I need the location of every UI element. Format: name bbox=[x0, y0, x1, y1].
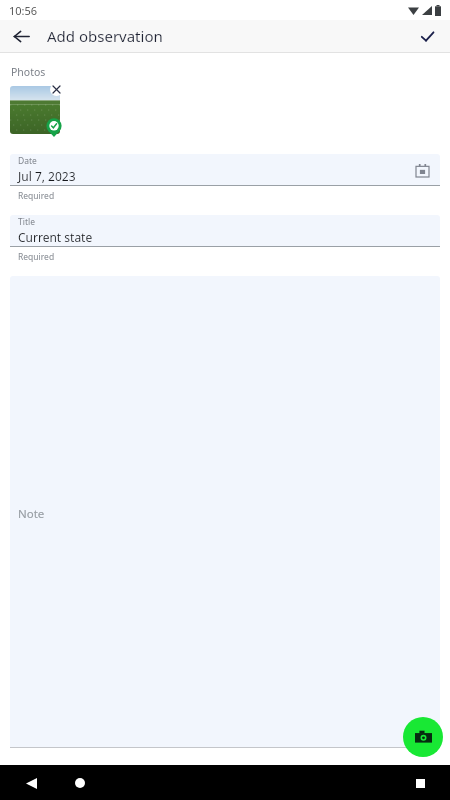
button[interactable]: Back bbox=[18, 770, 44, 796]
button[interactable]: Take photo bbox=[403, 717, 443, 757]
button[interactable]: Back bbox=[6, 21, 36, 51]
button[interactable] bbox=[10, 86, 60, 134]
button[interactable]: Title bbox=[10, 215, 440, 247]
button[interactable]: Date bbox=[10, 154, 440, 186]
button[interactable]: Save bbox=[412, 21, 442, 51]
staticText: Title bbox=[18, 216, 35, 228]
staticText: Add observation bbox=[47, 26, 163, 46]
staticText: Jul 7, 2023 bbox=[18, 168, 76, 184]
button[interactable]: Remove photo bbox=[50, 83, 63, 96]
staticText: Photos bbox=[11, 65, 46, 79]
staticText: 10:56 bbox=[9, 3, 38, 18]
staticText: Date bbox=[18, 155, 37, 167]
staticText: Required bbox=[18, 190, 55, 202]
button[interactable]: Pick date bbox=[414, 162, 430, 178]
staticText: Note bbox=[18, 506, 45, 522]
button[interactable]: Recents bbox=[407, 770, 433, 796]
staticText: Required bbox=[18, 251, 55, 263]
button[interactable]: Home bbox=[67, 770, 93, 796]
button[interactable]: Note bbox=[10, 276, 440, 747]
staticText: Current state bbox=[18, 229, 93, 245]
